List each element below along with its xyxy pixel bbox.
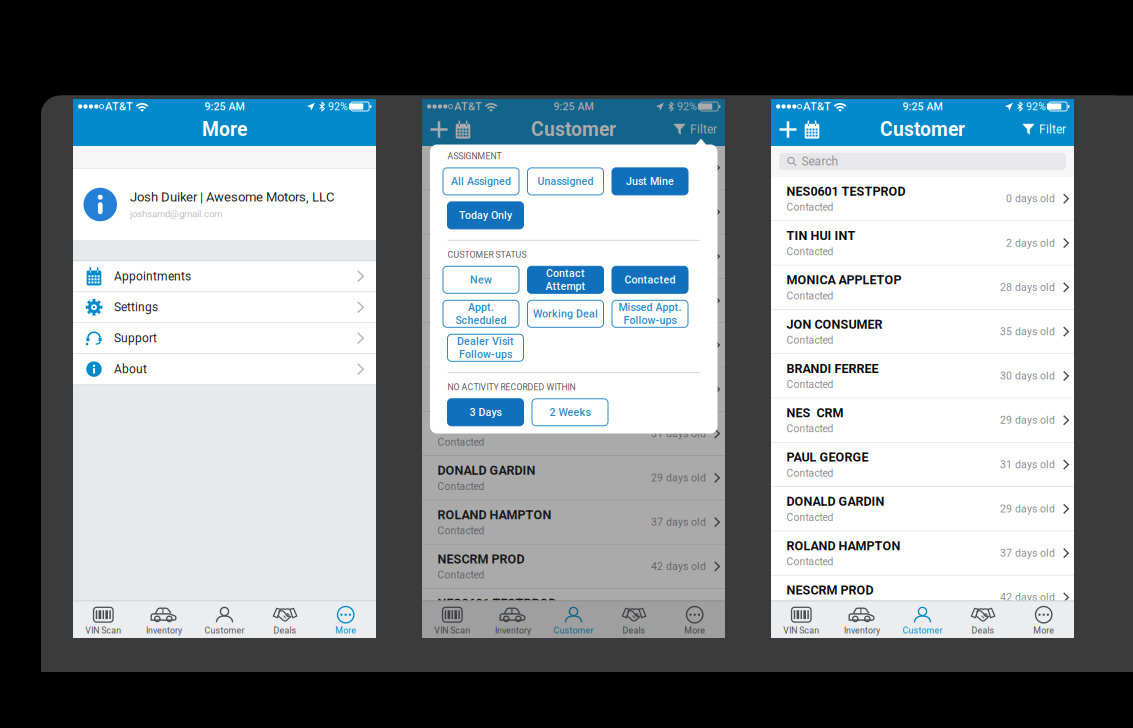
button[interactable]: BRANDI FERREE xyxy=(771,354,1074,398)
staticText: VIN Scan xyxy=(783,625,819,636)
staticText: Just Mine xyxy=(626,175,674,188)
staticText: Customer xyxy=(902,625,942,636)
button[interactable]: PAUL GEORGE xyxy=(771,443,1074,487)
button[interactable]: Contacted xyxy=(612,266,688,293)
button[interactable]: Deals xyxy=(604,601,664,638)
button[interactable]: Filter xyxy=(673,122,725,137)
button[interactable]: Inventory xyxy=(832,601,892,638)
staticText: 92% xyxy=(1026,100,1046,113)
staticText: 29 days old xyxy=(651,472,706,484)
staticText: Contacted xyxy=(624,274,675,286)
button[interactable]: Josh Duiker | Awesome Motors, LLC xyxy=(73,169,376,240)
staticText: Contacted xyxy=(786,467,833,479)
button[interactable]: Appt. xyxy=(443,300,519,327)
staticText: Search xyxy=(801,154,838,169)
button[interactable]: More xyxy=(1013,601,1074,638)
button[interactable]: JON CONSUMER xyxy=(422,279,725,323)
button[interactable]: Support xyxy=(73,323,376,354)
staticText: Contacted xyxy=(437,613,484,625)
staticText: Contacted xyxy=(786,201,833,213)
button[interactable]: Settings xyxy=(73,292,376,323)
staticText: Customer xyxy=(531,118,616,141)
button[interactable]: DONALD GARDIN xyxy=(771,487,1074,531)
staticText: Unassigned xyxy=(537,175,593,188)
button[interactable]: ROLAND HAMPTON xyxy=(771,531,1074,576)
button[interactable]: MONICA APPLETOP xyxy=(771,266,1074,310)
button[interactable]: Today Only xyxy=(447,202,523,229)
button[interactable]: NESCRM PROD xyxy=(771,576,1074,620)
staticText: Inventory xyxy=(495,625,531,636)
button[interactable]: MONICA APPLETOP xyxy=(422,235,725,279)
button[interactable]: 2 Weeks xyxy=(532,399,608,426)
button[interactable]: Just Mine xyxy=(612,168,688,195)
button[interactable]: Missed Appt. xyxy=(612,300,688,327)
button[interactable]: VIN Scan xyxy=(771,601,832,638)
staticText: PAUL GEORGE xyxy=(786,450,868,465)
button[interactable]: Inventory xyxy=(483,601,543,638)
button[interactable]: Unassigned xyxy=(527,168,603,195)
staticText: MONICA APPLETOP xyxy=(786,273,901,287)
button[interactable]: Working Deal xyxy=(527,300,603,327)
button[interactable]: VIN Scan xyxy=(422,601,483,638)
staticText: MONICA APPLETOP xyxy=(437,242,552,256)
button[interactable]: Dealer Visit xyxy=(447,334,523,361)
staticText: DONALD GARDIN xyxy=(786,494,884,509)
button[interactable]: JON CONSUMER xyxy=(771,310,1074,354)
button[interactable]: Contact xyxy=(527,266,603,293)
button[interactable]: About xyxy=(73,354,376,385)
button[interactable]: Deals xyxy=(255,601,315,638)
button[interactable]: BRANDI FERREE xyxy=(422,323,725,367)
button[interactable]: Search xyxy=(771,146,1074,177)
staticText: NO ACTIVITY RECORDED WITHIN xyxy=(447,382,575,392)
button[interactable]: Customer xyxy=(892,601,953,638)
staticText: 2 days old xyxy=(1006,237,1055,249)
staticText: 92% xyxy=(328,100,348,113)
staticText: Deals xyxy=(274,625,297,636)
button[interactable]: All Assigned xyxy=(443,168,519,195)
button[interactable]: Filter xyxy=(1022,122,1074,137)
staticText: Filter xyxy=(690,122,717,137)
button[interactable]: Customer xyxy=(194,601,255,638)
button[interactable]: Deals xyxy=(953,601,1013,638)
staticText: Contacted xyxy=(437,569,484,581)
button[interactable]: Appointments xyxy=(451,119,475,140)
button[interactable]: NES CRM xyxy=(771,398,1074,443)
button[interactable]: TIN HUI INT xyxy=(422,190,725,235)
staticText: 30 days old xyxy=(1000,370,1055,382)
staticText: More xyxy=(335,625,356,636)
button[interactable]: NES0601 TESTPROD xyxy=(422,146,725,190)
button[interactable]: NES0601 TESTPROD xyxy=(771,177,1074,221)
staticText: Contacted xyxy=(437,436,484,448)
staticText: Contacted xyxy=(437,392,484,404)
staticText: AT&T xyxy=(803,100,831,113)
button[interactable]: VIN Scan xyxy=(73,601,134,638)
button[interactable]: Inventory xyxy=(134,601,194,638)
button[interactable]: New xyxy=(443,266,519,293)
button[interactable]: Customer xyxy=(543,601,604,638)
button[interactable]: 3 Days xyxy=(447,399,523,426)
button[interactable]: Appointments xyxy=(73,261,376,292)
staticText: 28 days old xyxy=(1000,281,1055,293)
button[interactable]: TIN HUI INT xyxy=(771,221,1074,266)
staticText: More xyxy=(684,625,705,636)
staticText: NESCRM PROD xyxy=(786,583,873,597)
button[interactable]: NES0601 TESTPROD xyxy=(422,589,725,633)
button[interactable]: DONALD GARDIN xyxy=(422,456,725,500)
button[interactable]: Add customer xyxy=(422,119,451,140)
button[interactable]: More xyxy=(315,601,376,638)
button[interactable]: NES CRM xyxy=(422,367,725,412)
button[interactable]: Appointments xyxy=(800,119,824,140)
staticText: Contacted xyxy=(786,556,833,568)
button[interactable]: NESCRM PROD xyxy=(422,545,725,589)
button[interactable]: ROLAND HAMPTON xyxy=(422,500,725,545)
button[interactable]: PAUL GEORGE xyxy=(422,412,725,456)
staticText: Attempt xyxy=(545,280,585,293)
staticText: Appt. xyxy=(468,301,494,314)
staticText: More xyxy=(202,118,247,141)
button[interactable]: More xyxy=(664,601,725,638)
staticText: NES CRM xyxy=(786,406,843,420)
staticText: AT&T xyxy=(454,100,482,113)
button[interactable]: Add customer xyxy=(771,119,800,140)
staticText: BRANDI FERREE xyxy=(437,330,529,345)
